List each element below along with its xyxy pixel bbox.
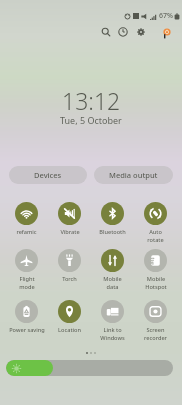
button[interactable]: Flight mode — [5, 249, 48, 290]
staticText: Devices — [34, 170, 62, 180]
staticText: 67% — [159, 11, 173, 21]
staticText: Media output — [109, 170, 158, 180]
button[interactable]: Mobile data — [91, 249, 134, 290]
staticText: Bluetooth — [99, 228, 126, 236]
staticText: Mobile Hotspot — [145, 275, 167, 290]
button[interactable]: Auto rotate — [134, 202, 177, 243]
button[interactable]: Brightness — [6, 360, 173, 376]
button[interactable]: Screen recorder — [134, 300, 177, 341]
button[interactable]: Location — [48, 300, 91, 334]
button[interactable]: Mobile Hotspot — [134, 249, 177, 290]
staticText: Screen recorder — [144, 326, 167, 341]
button[interactable]: Bluetooth — [91, 202, 134, 236]
button[interactable]: Power — [160, 25, 173, 38]
button[interactable]: refamic — [5, 202, 48, 236]
staticText: Location — [58, 326, 81, 334]
staticText: Flight mode — [19, 275, 35, 290]
button[interactable]: History — [116, 25, 129, 38]
staticText: Link to Windows — [100, 326, 125, 341]
staticText: refamic — [16, 228, 37, 236]
button[interactable]: Search — [99, 25, 112, 38]
staticText: Auto rotate — [147, 228, 164, 243]
staticText: Tue, 5 October — [60, 114, 122, 126]
staticText: Power saving — [9, 326, 45, 334]
staticText: Vibrate — [60, 228, 80, 236]
staticText: Torch — [62, 275, 77, 283]
staticText: 13:12 — [62, 85, 121, 116]
button[interactable]: Devices — [9, 166, 87, 184]
button[interactable]: Torch — [48, 249, 91, 283]
button[interactable]: Settings — [134, 25, 147, 38]
button[interactable]: Media output — [94, 166, 173, 184]
button[interactable]: Vibrate — [48, 202, 91, 236]
button[interactable]: Link to Windows — [91, 300, 134, 341]
staticText: Mobile data — [103, 275, 122, 290]
button[interactable]: Power saving — [5, 300, 48, 334]
